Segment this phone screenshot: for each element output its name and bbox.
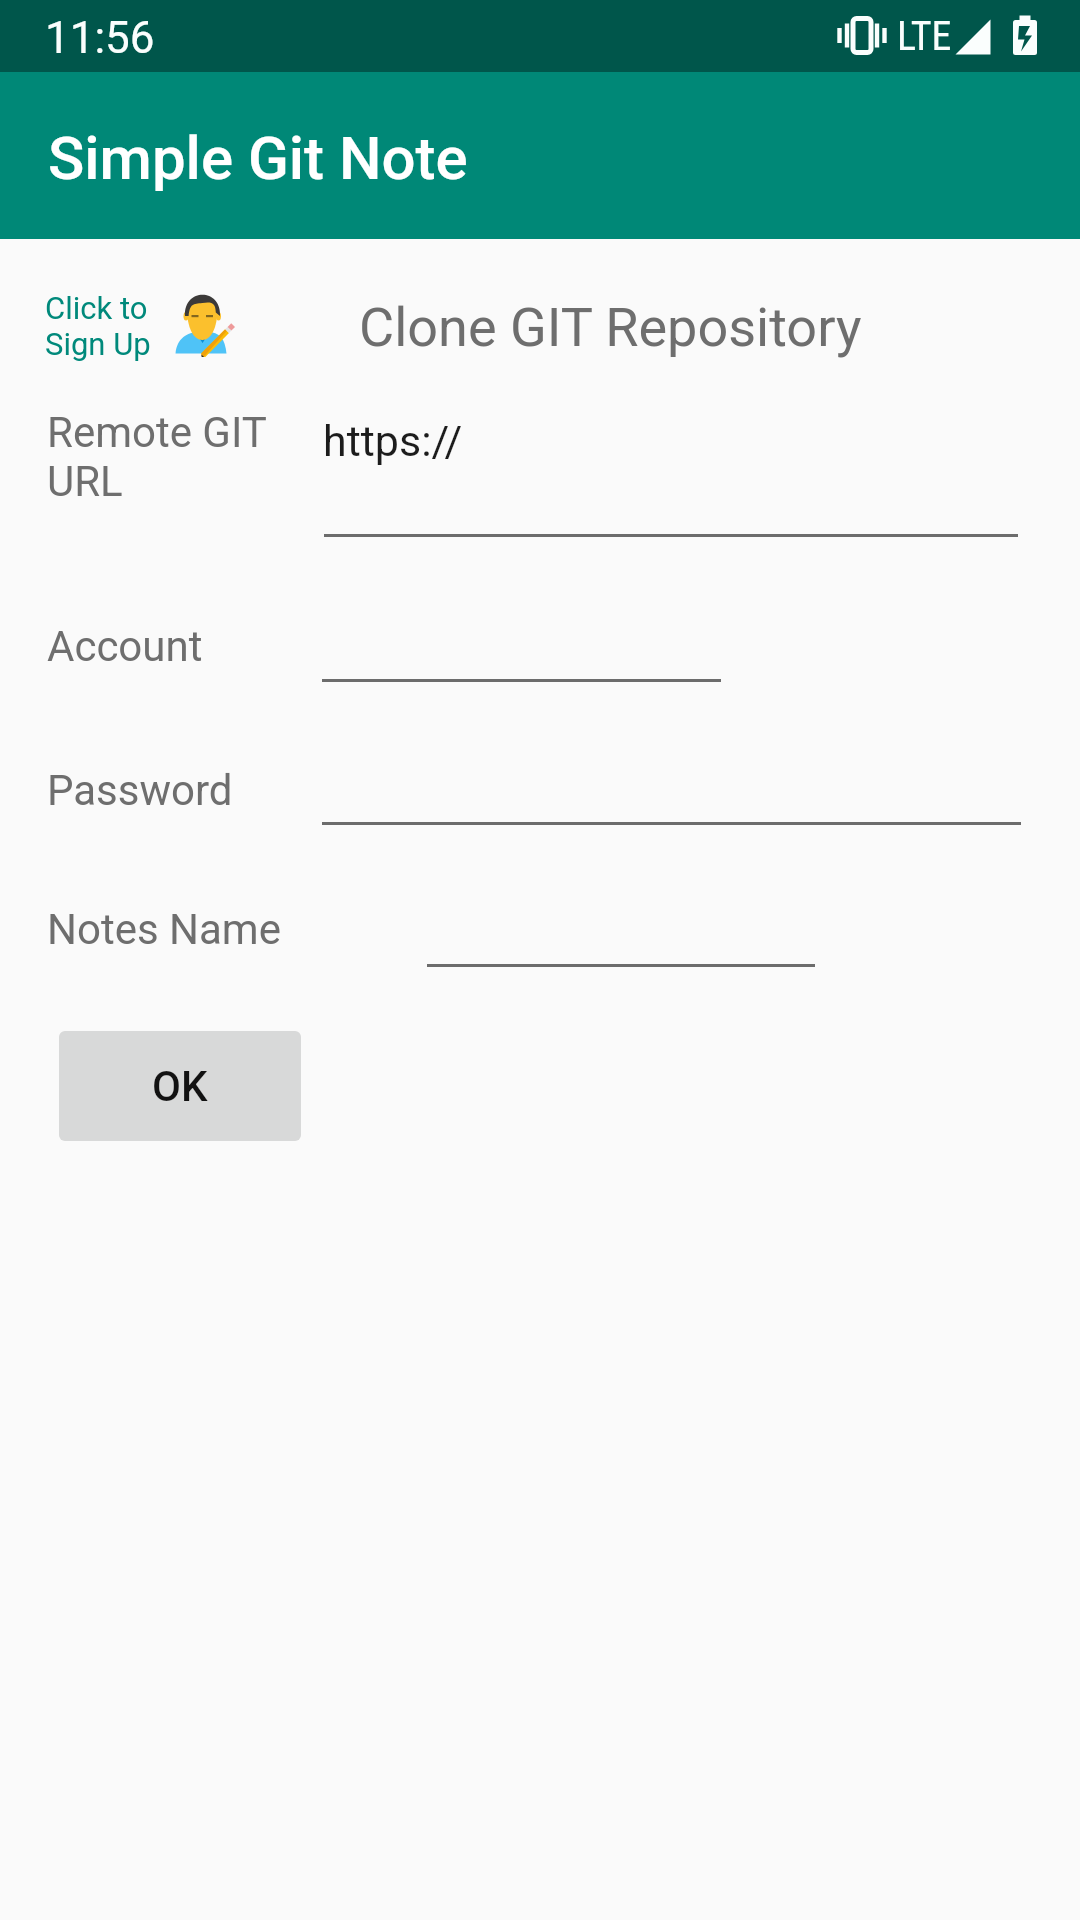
staticText: Account [47,622,203,671]
staticText: LTE [897,13,952,60]
staticText: Simple Git Note [48,123,468,193]
staticText: https:// [323,416,463,466]
staticText: Click to Sign Up [45,290,151,362]
staticText: Remote GIT URL [47,408,267,506]
staticText: Clone GIT Repository [359,296,862,359]
staticText: Notes Name [47,905,281,954]
other: Vibrate, signal strength and battery cha… [0,0,1080,72]
button[interactable]: Click to Sign Up [40,282,250,366]
staticText: 11:56 [45,12,155,64]
staticText: OK [152,1062,208,1111]
staticText: Password [47,766,233,815]
button[interactable]: OK [59,1031,301,1141]
